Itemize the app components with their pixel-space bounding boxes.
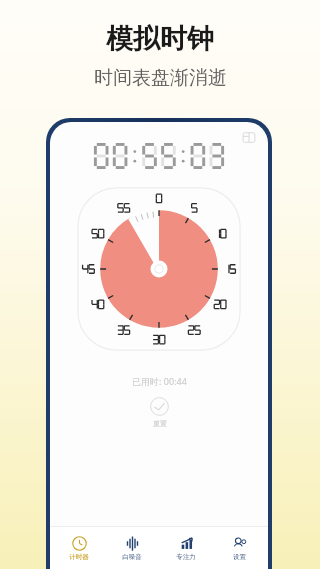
staticText: 专注力 — [176, 553, 196, 561]
staticText: 模拟时钟 — [106, 22, 214, 56]
staticText: 时间表盘渐消逝 — [94, 66, 227, 90]
button[interactable]: 计时器 — [55, 533, 103, 564]
button[interactable]: 专注力 — [162, 533, 210, 564]
staticText: 已用时: 00:44 — [132, 375, 187, 387]
button[interactable]: 重置 — [150, 397, 169, 428]
button[interactable]: Presets — [242, 130, 256, 144]
staticText: 重置 — [153, 419, 167, 428]
button[interactable]: 设置 — [215, 533, 263, 564]
staticText: 计时器 — [69, 553, 89, 561]
staticText: 白噪音 — [122, 553, 142, 561]
button[interactable]: 白噪音 — [108, 533, 156, 564]
staticText: 设置 — [233, 553, 246, 561]
